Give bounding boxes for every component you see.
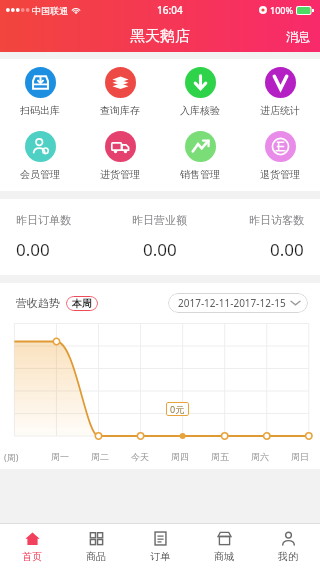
button[interactable]: 会员管理 bbox=[0, 129, 80, 183]
button[interactable]: 查询库存 bbox=[80, 65, 160, 119]
staticText: 0.00 bbox=[16, 238, 50, 261]
staticText: 查询库存 bbox=[100, 104, 140, 117]
staticText: 商城 bbox=[214, 550, 234, 563]
staticText: 会员管理 bbox=[20, 168, 60, 181]
staticText: 0.00 bbox=[270, 238, 304, 261]
staticText: 周六 bbox=[251, 451, 269, 462]
staticText: 扫码出库 bbox=[20, 104, 60, 117]
button[interactable]: 入库核验 bbox=[160, 65, 240, 119]
staticText: 0元 bbox=[170, 403, 185, 415]
staticText: 销售管理 bbox=[180, 168, 220, 181]
button[interactable]: 我的 bbox=[256, 524, 320, 568]
staticText: 0.00 bbox=[143, 238, 177, 261]
staticText: 中国联通 bbox=[32, 5, 68, 16]
button[interactable]: 商城 bbox=[192, 524, 256, 568]
button[interactable]: 订单 bbox=[128, 524, 192, 568]
staticText: 入库核验 bbox=[180, 104, 220, 117]
staticText: 黑天鹅店 bbox=[130, 27, 190, 46]
staticText: 昨日营业额 bbox=[132, 213, 187, 227]
button[interactable]: 销售管理 bbox=[160, 129, 240, 183]
staticText: 首页 bbox=[22, 550, 42, 563]
staticText: 周五 bbox=[211, 451, 229, 462]
button[interactable]: 进货管理 bbox=[80, 129, 160, 183]
staticText: 100% bbox=[270, 4, 294, 16]
button[interactable]: 进店统计 bbox=[240, 65, 320, 119]
button[interactable]: 扫码出库 bbox=[0, 65, 80, 119]
button[interactable]: 首页 bbox=[0, 524, 64, 568]
staticText: 进店统计 bbox=[260, 104, 300, 117]
staticText: 营收趋势 bbox=[16, 296, 60, 310]
staticText: 退货管理 bbox=[260, 168, 300, 181]
staticText: 2017-12-11-2017-12-15 bbox=[178, 296, 286, 310]
staticText: 16:04 bbox=[157, 3, 183, 17]
button[interactable]: 商品 bbox=[64, 524, 128, 568]
staticText: 消息 bbox=[286, 29, 310, 44]
staticText: 我的 bbox=[278, 550, 298, 563]
staticText: (周) bbox=[4, 451, 19, 463]
staticText: 进货管理 bbox=[100, 168, 140, 181]
staticText: 今天 bbox=[131, 451, 149, 462]
staticText: 昨日订单数 bbox=[16, 213, 71, 227]
staticText: 本周 bbox=[72, 297, 92, 310]
staticText: 周日 bbox=[291, 451, 309, 462]
staticText: 商品 bbox=[86, 550, 106, 563]
button[interactable]: 消息 bbox=[276, 23, 320, 50]
staticText: 订单 bbox=[150, 550, 170, 563]
staticText: 周一 bbox=[51, 451, 69, 462]
staticText: 周四 bbox=[171, 451, 189, 462]
staticText: 昨日访客数 bbox=[249, 213, 304, 227]
button[interactable]: 退货管理 bbox=[240, 129, 320, 183]
button[interactable]: 2017-12-11-2017-12-15 bbox=[168, 293, 308, 313]
staticText: 周二 bbox=[91, 451, 109, 462]
